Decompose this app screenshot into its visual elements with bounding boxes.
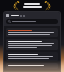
button[interactable]: Award laurel [0, 0, 64, 11]
button[interactable] [6, 63, 58, 69]
button[interactable] [6, 39, 58, 50]
button[interactable] [6, 28, 58, 37]
button[interactable]: Menu [6, 14, 9, 17]
other: Award laurel [44, 1, 51, 10]
button[interactable] [6, 52, 58, 61]
button[interactable]: Search [6, 19, 58, 24]
other: Search [8, 20, 11, 23]
other: Award laurel [13, 1, 20, 10]
